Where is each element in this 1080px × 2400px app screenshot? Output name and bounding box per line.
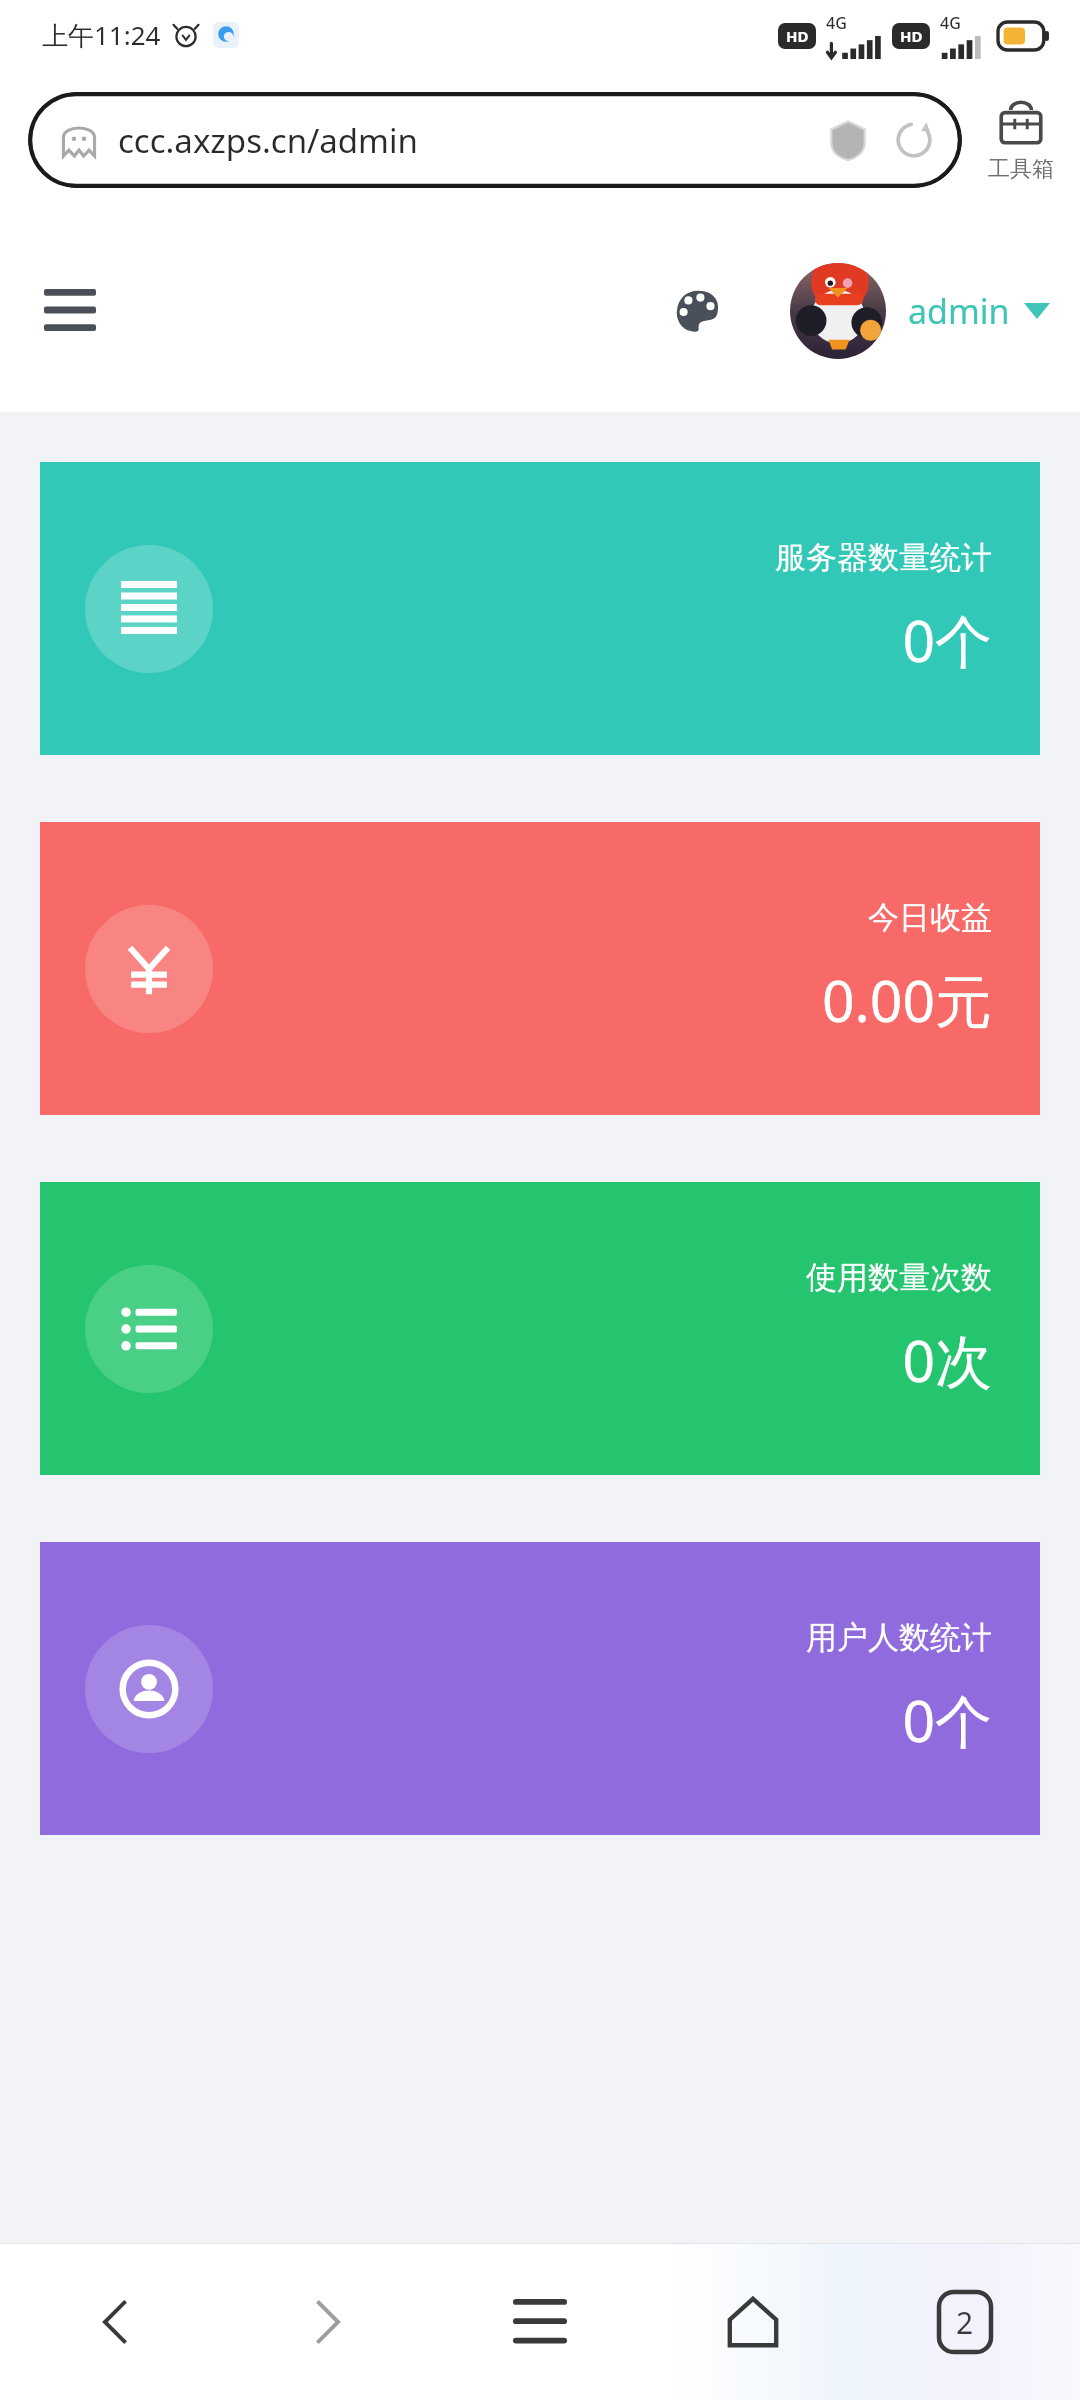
staticText: 2 xyxy=(956,2302,974,2343)
button[interactable]: 服务器数量统计 xyxy=(40,462,1040,755)
button[interactable]: Forward xyxy=(273,2267,383,2377)
staticText: 使用数量次数 xyxy=(806,1258,992,1297)
button[interactable]: Menu xyxy=(485,2267,595,2377)
staticText: 今日收益 xyxy=(868,898,992,937)
staticText: admin xyxy=(908,288,1010,334)
staticText: 0次 xyxy=(902,1321,992,1399)
button[interactable]: 用户人数统计 xyxy=(40,1542,1040,1835)
button[interactable]: admin xyxy=(790,263,1080,359)
button[interactable]: 使用数量次数 xyxy=(40,1182,1040,1475)
staticText: ccc.axzps.cn/admin xyxy=(118,118,418,163)
button[interactable]: Menu xyxy=(26,267,114,355)
staticText: 上午11:24 xyxy=(42,17,161,53)
staticText: 服务器数量统计 xyxy=(775,538,992,577)
button[interactable]: Address bar xyxy=(28,92,962,188)
button[interactable]: Home xyxy=(698,2267,808,2377)
staticText: 4G xyxy=(940,12,961,34)
other: Reload xyxy=(892,118,936,162)
button[interactable]: Toolbox xyxy=(962,70,1080,210)
staticText: 0.00元 xyxy=(821,961,992,1039)
staticText: HD xyxy=(900,26,923,46)
button[interactable]: Back xyxy=(60,2267,170,2377)
staticText: 4G xyxy=(826,12,847,34)
button[interactable]: Tabs xyxy=(910,2267,1020,2377)
staticText: HD xyxy=(786,26,809,46)
staticText: 用户人数统计 xyxy=(806,1618,992,1657)
button[interactable]: 今日收益 xyxy=(40,822,1040,1115)
button[interactable]: Theme xyxy=(656,269,740,353)
staticText: 工具箱 xyxy=(988,155,1054,183)
staticText: 0个 xyxy=(902,1681,992,1759)
staticText: 0个 xyxy=(902,601,992,679)
other: Site info xyxy=(826,118,870,162)
